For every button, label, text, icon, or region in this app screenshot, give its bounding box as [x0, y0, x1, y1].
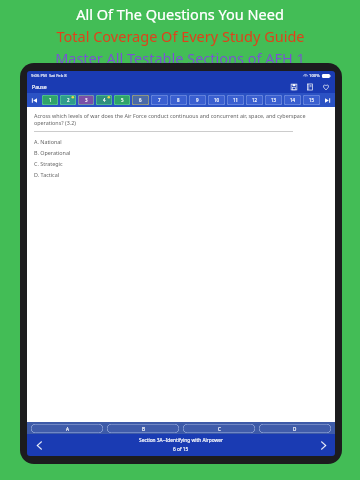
button[interactable]: First question — [29, 95, 40, 106]
staticText: 6 of 15 — [173, 446, 189, 453]
button[interactable]: 6 — [132, 95, 149, 105]
button[interactable]: A. National — [34, 136, 328, 147]
button[interactable]: 1 — [42, 95, 58, 105]
staticText: 7 — [158, 97, 161, 103]
button[interactable]: 8 — [170, 95, 187, 105]
button[interactable]: 5 — [114, 95, 130, 105]
staticText: A. National — [34, 138, 62, 145]
staticText: B — [142, 426, 145, 432]
staticText: 14 — [290, 97, 296, 103]
staticText: All Of The Questions You Need — [76, 4, 284, 24]
button[interactable]: A — [31, 424, 103, 433]
button[interactable]: D — [259, 424, 331, 433]
button[interactable]: C. Strategic — [34, 158, 328, 169]
button[interactable]: 7 — [151, 95, 168, 105]
button[interactable]: Favorite — [320, 81, 331, 92]
button[interactable]: D. Tactical — [34, 169, 328, 180]
staticText: D — [293, 426, 297, 432]
staticText: 10 — [214, 97, 220, 103]
button[interactable]: Last question — [322, 95, 333, 106]
button[interactable]: 12 — [246, 95, 263, 105]
button[interactable]: 13 — [265, 95, 282, 105]
staticText: 12 — [252, 97, 258, 103]
staticText: 9:06 PM Sat Feb 8 — [31, 73, 67, 79]
button[interactable]: 15 — [303, 95, 320, 105]
button[interactable]: 10 — [208, 95, 225, 105]
staticText: Pause — [32, 83, 47, 90]
button[interactable]: 9 — [189, 95, 206, 105]
staticText: 15 — [309, 97, 315, 103]
button[interactable]: C — [183, 424, 255, 433]
staticText: 100% — [309, 73, 320, 79]
button[interactable]: 2 — [60, 95, 76, 105]
staticText: Total Coverage Of Every Study Guide — [56, 26, 305, 46]
staticText: Master All Testable Sections of AFH 1 — [55, 48, 305, 68]
button[interactable]: 11 — [227, 95, 244, 105]
staticText: 8 — [177, 97, 180, 103]
staticText: Section 3A--Identifying with Airpower — [139, 437, 223, 444]
staticText: D. Tactical — [34, 171, 60, 178]
button[interactable]: B. Operational — [34, 147, 328, 158]
button[interactable]: Previous — [31, 437, 47, 453]
button[interactable]: 4 — [96, 95, 112, 105]
staticText: 5 — [121, 97, 124, 103]
button[interactable]: 14 — [284, 95, 301, 105]
staticText: C. Strategic — [34, 160, 63, 167]
staticText: 6 — [139, 97, 142, 103]
button[interactable]: Save notes — [288, 81, 299, 92]
button[interactable]: Pause — [31, 82, 48, 91]
staticText: 9 — [196, 97, 199, 103]
staticText: Across which levels of war does the Air … — [34, 112, 328, 127]
staticText: 1 — [49, 97, 52, 103]
staticText: B. Operational — [34, 149, 71, 156]
staticText: C — [218, 426, 221, 432]
button[interactable]: Reference — [304, 81, 315, 92]
button[interactable]: 3 — [78, 95, 94, 105]
staticText: 13 — [271, 97, 277, 103]
staticText: 4 — [103, 97, 106, 103]
staticText: A — [66, 426, 69, 432]
button[interactable]: B — [107, 424, 179, 433]
button[interactable]: Next — [315, 437, 331, 453]
staticText: 11 — [233, 97, 239, 103]
staticText: 2 — [67, 97, 70, 103]
staticText: 3 — [85, 97, 88, 103]
